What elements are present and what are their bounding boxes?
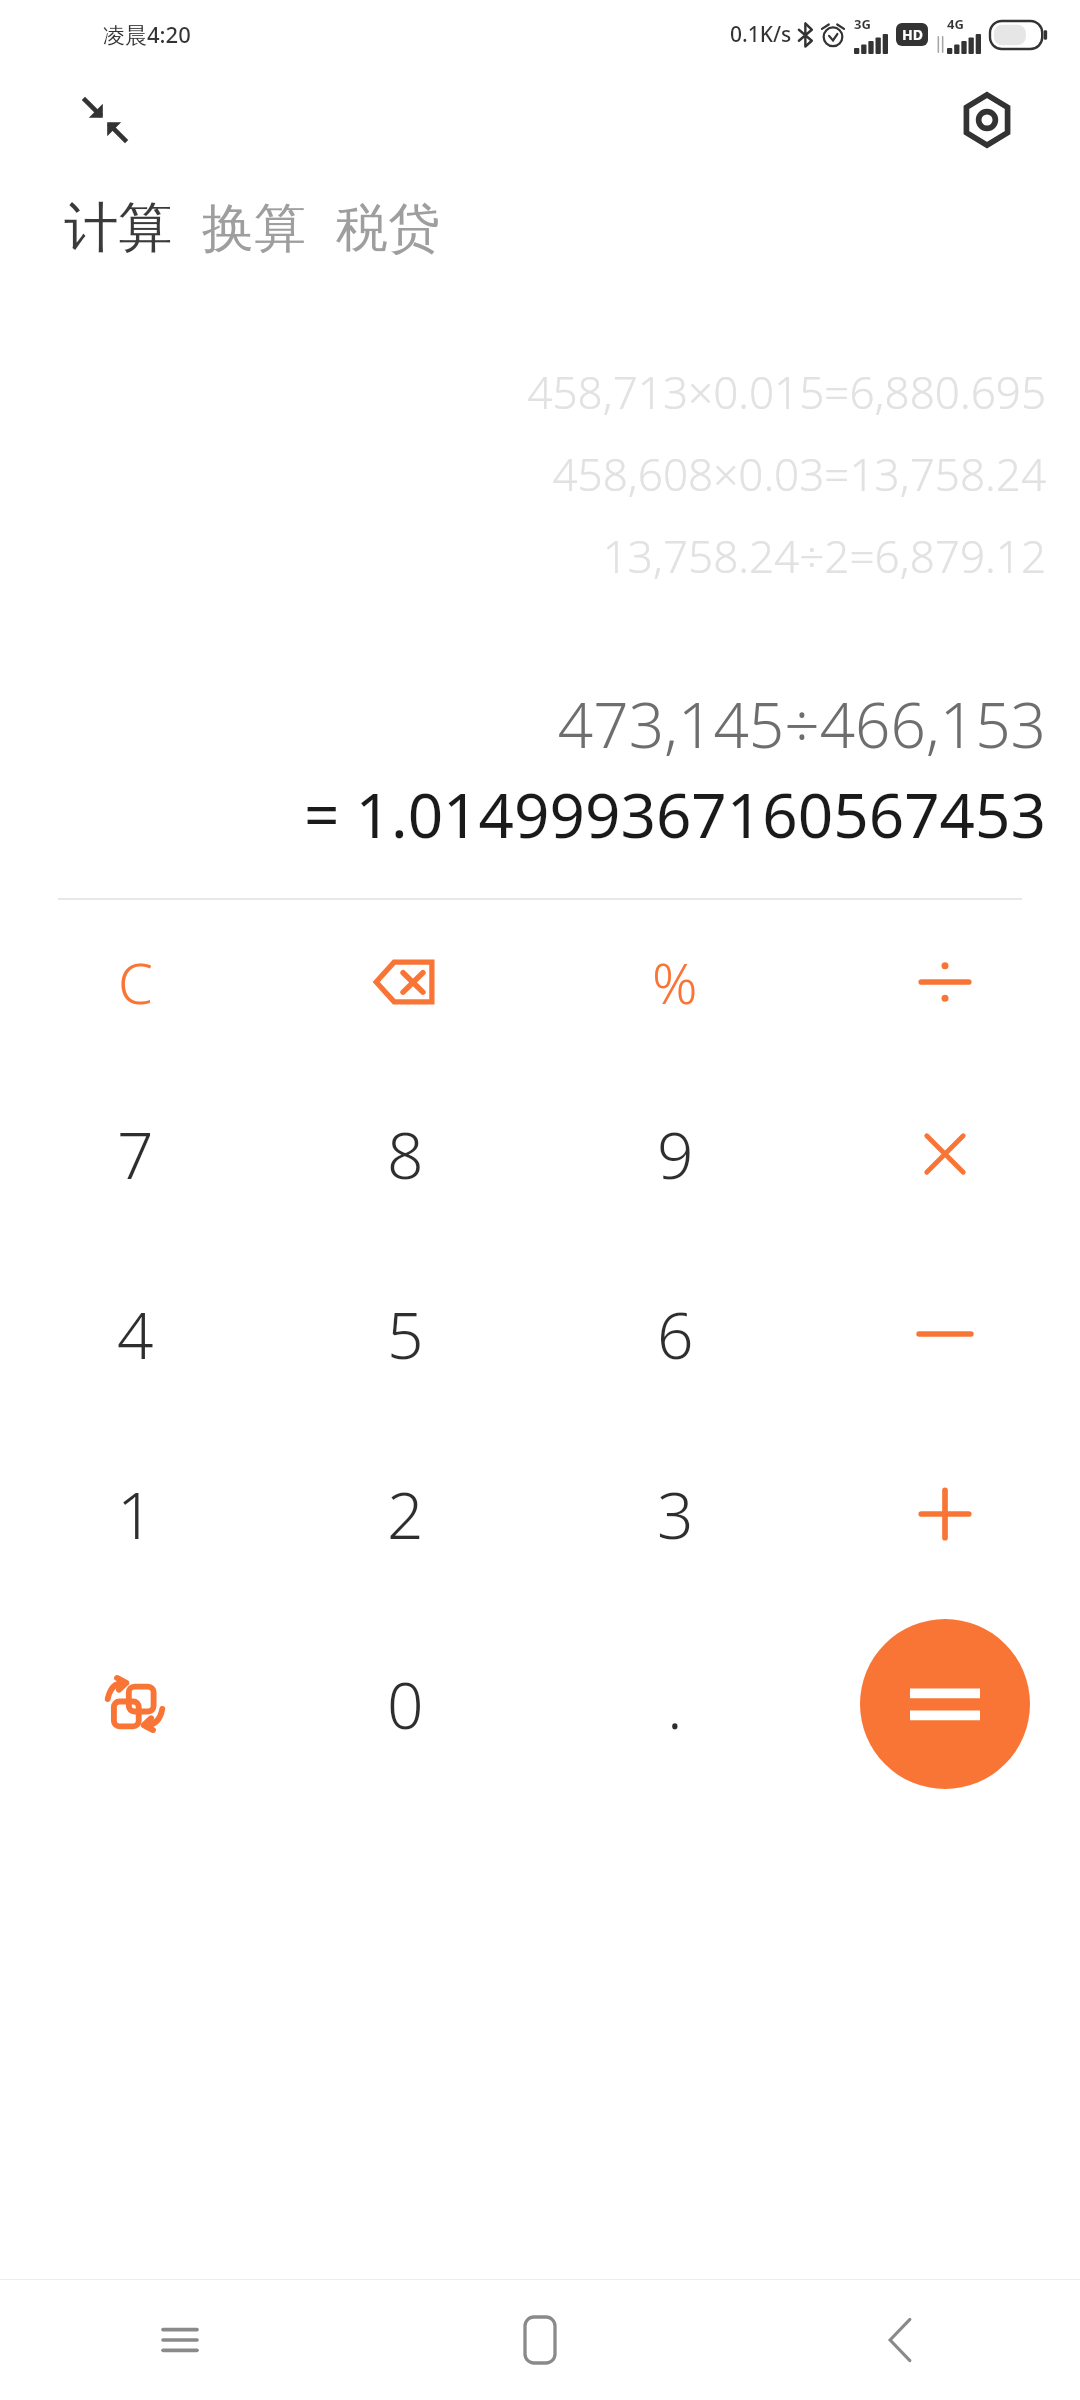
button[interactable]: 3 [540,1424,810,1604]
staticText: . [667,1661,683,1748]
staticText: 7 [117,1111,154,1198]
staticText: 0.1K/s [730,20,792,49]
staticText: = 1.014999367160567453 [303,772,1046,856]
staticText: 3 [657,1471,694,1558]
button[interactable]: 换算 [202,196,314,262]
staticText: 5 [387,1291,424,1378]
staticText: 473,145÷466,153 [557,682,1046,766]
button[interactable]: 9 [540,1064,810,1244]
button[interactable]: 7 [0,1064,270,1244]
staticText: 458,608×0.03=13,758.24 [552,444,1046,504]
button[interactable]: 2 [270,1424,540,1604]
button[interactable]: 0 [270,1604,540,1804]
staticText: 2 [387,1471,424,1558]
button[interactable]: Equals [860,1619,1030,1789]
staticText: 9 [657,1111,694,1198]
staticText: HD [902,25,923,44]
staticText: 换算 [202,196,306,262]
staticText: 凌晨4:20 [103,19,191,49]
staticText: 13,758.24÷2=6,879.12 [602,526,1046,586]
button[interactable]: 1 [0,1424,270,1604]
button[interactable]: . [540,1604,810,1804]
button[interactable]: 5 [270,1244,540,1424]
button[interactable]: 计算 [64,194,180,262]
button[interactable]: Unit convert [0,1604,270,1804]
button[interactable]: Multiply [810,1064,1080,1244]
button[interactable]: Divide [810,900,1080,1064]
staticText: 1 [117,1471,154,1558]
button[interactable]: C [0,900,270,1064]
button[interactable]: 4 [0,1244,270,1424]
button[interactable]: 8 [270,1064,540,1244]
staticText: 计算 [64,194,172,262]
staticText: 0 [387,1661,424,1748]
button[interactable]: 税贷 [336,196,448,262]
button[interactable]: Back [720,2280,1080,2400]
staticText: 458,713×0.015=6,880.695 [527,362,1046,422]
button[interactable]: 6 [540,1244,810,1424]
staticText: 3G [854,15,871,33]
button[interactable]: Home [360,2280,720,2400]
button[interactable]: Settings [948,81,1026,159]
button[interactable]: Recents [0,2280,360,2400]
staticText: 4G [947,15,964,33]
button[interactable]: Plus [810,1424,1080,1604]
staticText: 8 [387,1111,424,1198]
staticText: 税贷 [336,196,440,262]
button[interactable]: Collapse [66,81,144,159]
button[interactable]: Backspace [270,900,540,1064]
staticText: 6 [657,1291,694,1378]
staticText: % [652,944,698,1020]
button[interactable]: Minus [810,1244,1080,1424]
button[interactable]: % [540,900,810,1064]
staticText: C [118,944,153,1020]
staticText: 4 [117,1291,154,1378]
